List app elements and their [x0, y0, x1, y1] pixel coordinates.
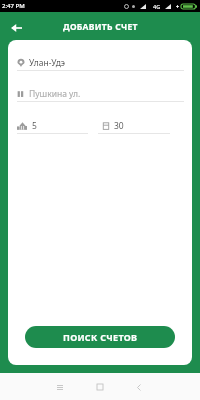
button[interactable]: Пушкина ул.	[17, 81, 184, 102]
button[interactable]: 5	[17, 113, 88, 134]
button[interactable]: ПОИСК СЧЕТОВ	[25, 326, 175, 348]
staticText: Пушкина ул.	[29, 88, 81, 100]
button[interactable]: Улан-Удэ	[17, 50, 184, 71]
staticText: 2:47 PM	[2, 2, 25, 10]
button[interactable]: Назад	[128, 376, 150, 398]
staticText: ПОИСК СЧЕТОВ	[63, 331, 138, 343]
staticText: 4G	[153, 3, 161, 10]
staticText: Улан-Удэ	[29, 57, 66, 69]
button[interactable]: Недавние	[49, 376, 71, 398]
staticText: 5	[32, 120, 37, 132]
button[interactable]: Назад	[4, 16, 28, 40]
staticText: ДОБАВИТЬ СЧЕТ	[63, 21, 138, 33]
staticText: 30	[114, 120, 124, 132]
button[interactable]: 30	[98, 113, 170, 134]
button[interactable]: Домой	[89, 376, 111, 398]
